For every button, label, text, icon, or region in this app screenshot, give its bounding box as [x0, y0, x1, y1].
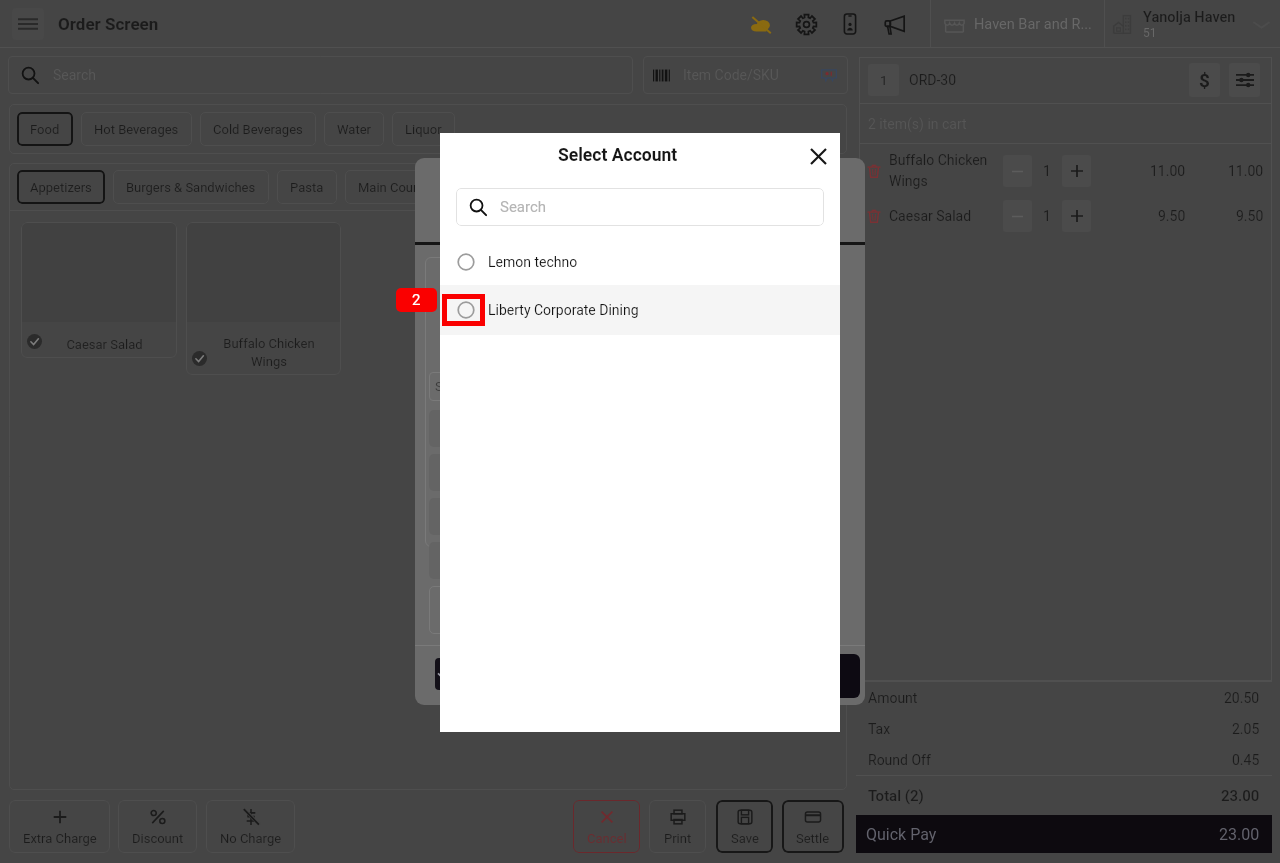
staticText: Print	[664, 831, 692, 846]
staticText: Cancel	[587, 831, 627, 846]
staticText: Hot Beverages	[94, 122, 179, 137]
button[interactable]: Pasta	[277, 170, 337, 204]
button[interactable]: Lemon techno	[440, 239, 840, 285]
staticText: Item Code/SKU	[683, 67, 779, 83]
staticText: Cold Beverages	[213, 122, 303, 137]
button[interactable]: Print	[649, 800, 706, 853]
button[interactable]: Increase quantity	[1062, 155, 1091, 187]
button[interactable]: Search	[8, 56, 633, 94]
staticText: Haven Bar and R...	[974, 16, 1092, 33]
button[interactable]: Extra Charge	[9, 800, 110, 853]
staticText: Buffalo Chicken Wings	[223, 336, 315, 369]
button[interactable]: Settle	[782, 800, 844, 853]
staticText: Caesar Salad	[889, 208, 972, 224]
button[interactable]: Announcements	[872, 0, 916, 48]
button[interactable]: Quick Pay	[856, 815, 1272, 853]
staticText: Order Screen	[58, 14, 159, 34]
button[interactable]: Main Course	[345, 170, 445, 204]
staticText: 2.05	[1232, 721, 1260, 737]
button[interactable]: Increase quantity	[1062, 200, 1091, 232]
staticText: Caesar Salad	[66, 337, 143, 352]
staticText: 11.00	[1150, 163, 1186, 179]
button[interactable]: Haven Bar and R...	[931, 0, 1104, 48]
button[interactable]: Close	[802, 140, 834, 172]
button[interactable]: Remove item	[863, 205, 885, 227]
button[interactable]: Appetizers	[17, 170, 105, 204]
button[interactable]: Scan loyalty card	[820, 66, 838, 84]
staticText: 23.00	[1219, 825, 1260, 844]
staticText: Liberty Corporate Dining	[488, 302, 639, 318]
button[interactable]: Caesar Salad	[21, 222, 177, 358]
staticText: 23.00	[1221, 787, 1260, 805]
staticText: Burgers & Sandwiches	[126, 180, 256, 195]
button[interactable]: Food	[17, 112, 73, 146]
staticText: 11.00	[1228, 163, 1264, 179]
staticText: S	[435, 379, 443, 394]
button[interactable]: Hot Beverages	[81, 112, 192, 146]
staticText: Quick Pay	[866, 825, 937, 844]
staticText: 1	[1043, 208, 1051, 224]
button[interactable]: Open navigation menu	[12, 8, 44, 40]
staticText: Lemon techno	[488, 254, 578, 270]
button[interactable]: Offline	[740, 0, 784, 48]
staticText: 2 item(s) in cart	[868, 116, 967, 132]
staticText: 0.45	[1232, 752, 1260, 768]
staticText: Liquor	[405, 122, 442, 137]
staticText: 9.50	[1158, 208, 1186, 224]
staticText: 9.50	[1236, 208, 1264, 224]
staticText: 20.50	[1224, 690, 1260, 706]
staticText: 1	[880, 72, 888, 88]
staticText: Yanolja Haven	[1143, 9, 1236, 26]
staticText: Total (2)	[868, 787, 924, 805]
button[interactable]: Cancel	[573, 800, 640, 853]
staticText: Pasta	[290, 180, 324, 195]
staticText: 1	[1043, 163, 1051, 179]
staticText: Main Course	[358, 180, 432, 195]
button[interactable]: Save	[716, 800, 773, 853]
staticText: Save	[731, 831, 759, 846]
button[interactable]: No Charge	[206, 800, 295, 853]
staticText: Round Off	[868, 752, 931, 768]
button[interactable]: Order count	[868, 64, 899, 96]
staticText: Select Account	[558, 145, 678, 166]
staticText: No Charge	[220, 831, 282, 846]
button[interactable]: Item Code/SKU	[643, 56, 848, 94]
button[interactable]: Discount	[118, 800, 197, 853]
staticText: Appetizers	[30, 180, 92, 195]
button[interactable]: Device	[828, 0, 872, 48]
staticText: 2	[412, 291, 421, 309]
button[interactable]: Cold Beverages	[200, 112, 316, 146]
staticText: Tax	[868, 721, 891, 737]
button[interactable]: Burgers & Sandwiches	[113, 170, 269, 204]
staticText: $	[1199, 69, 1210, 91]
button[interactable]: Liberty Corporate Dining	[440, 285, 840, 335]
button[interactable]: Amount	[1189, 63, 1220, 97]
staticText: Amount	[868, 690, 918, 706]
button[interactable]: Remove item	[863, 160, 885, 182]
staticText: Search	[53, 67, 97, 83]
staticText: Extra Charge	[23, 831, 97, 846]
staticText: Settle	[796, 831, 830, 846]
staticText: ORD-30	[909, 72, 957, 88]
staticText: 51	[1143, 26, 1157, 40]
staticText: Water	[337, 122, 371, 137]
button[interactable]: Buffalo Chicken Wings	[186, 222, 341, 375]
staticText: Buffalo Chicken Wings	[889, 152, 988, 189]
staticText: Food	[30, 122, 60, 137]
button[interactable]: Water	[324, 112, 384, 146]
button[interactable]: Liquor	[392, 112, 455, 146]
button[interactable]: Settings	[784, 0, 828, 48]
staticText: Search	[500, 198, 547, 216]
button[interactable]: Yanolja Haven	[1105, 0, 1280, 48]
staticText: Discount	[132, 831, 184, 846]
button[interactable]: Search	[456, 188, 824, 226]
button[interactable]: Filter	[1229, 63, 1260, 97]
